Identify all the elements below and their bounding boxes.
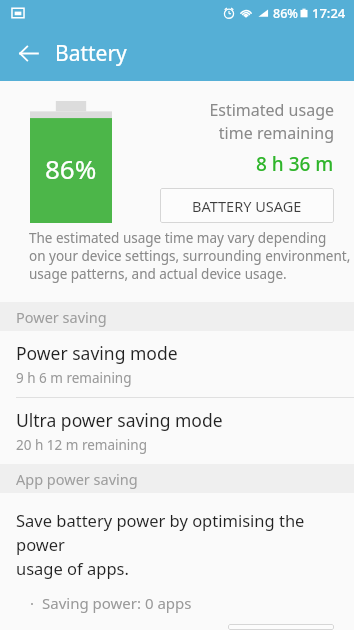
staticText: 86% <box>273 5 298 22</box>
button[interactable]: Ultra power saving mode <box>0 398 354 464</box>
staticText: Saving power: 0 apps <box>42 593 192 613</box>
staticText: 9 h 6 m remaining <box>16 369 132 387</box>
staticText: Power saving mode <box>16 341 178 365</box>
button[interactable]: Power saving mode <box>0 331 354 397</box>
staticText: 8 h 36 m <box>256 151 334 177</box>
staticText: Power saving <box>16 307 107 327</box>
staticText: 20 h 12 m remaining <box>16 436 147 454</box>
staticText: 17:24 <box>312 4 346 22</box>
staticText: BATTERY USAGE <box>192 196 302 216</box>
staticText: App power saving <box>16 469 138 489</box>
staticText: · <box>30 593 35 613</box>
staticText: Ultra power saving mode <box>16 408 223 432</box>
button[interactable]: BATTERY USAGE <box>160 188 334 223</box>
staticText: The estimated usage time may vary depend… <box>29 229 351 283</box>
staticText: DETAILS <box>253 624 309 630</box>
button[interactable]: DETAILS <box>228 624 334 630</box>
staticText: Estimated usage time remaining <box>144 99 334 144</box>
button[interactable]: Navigate up <box>8 33 48 73</box>
staticText: 86% <box>45 151 97 186</box>
staticText: Battery <box>55 39 127 68</box>
staticText: Save battery power by optimising the pow… <box>16 509 354 580</box>
